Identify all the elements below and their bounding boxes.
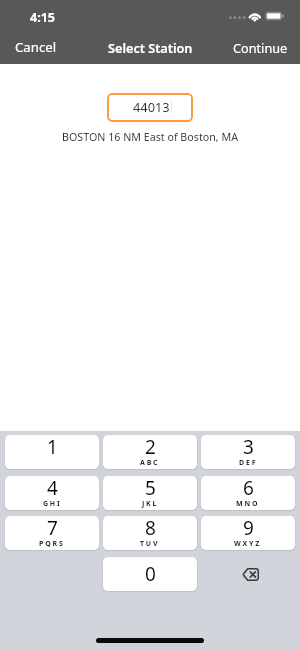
staticText: 0 [145, 561, 156, 587]
button[interactable]: 2 [103, 435, 197, 469]
staticText: 3 [243, 435, 254, 460]
button[interactable]: 8 [103, 516, 197, 550]
staticText: WXYZ [234, 539, 262, 549]
staticText: 5 [145, 476, 156, 501]
staticText: TUV [140, 539, 160, 549]
staticText: DEF [239, 458, 258, 468]
button[interactable]: 5 [103, 476, 197, 510]
button[interactable]: 7 [5, 516, 99, 550]
button[interactable]: 9 [201, 516, 295, 550]
staticText: Cancel [15, 38, 57, 56]
staticText: Select Station [108, 39, 193, 56]
staticText: 44013 [133, 98, 170, 115]
button[interactable]: 1 [5, 435, 99, 469]
button[interactable]: 6 [201, 476, 295, 510]
button[interactable]: 0 [103, 557, 197, 591]
button[interactable]: 44013 [107, 93, 193, 122]
staticText: 1 [47, 435, 58, 460]
button[interactable]: Cancel [0, 31, 67, 63]
staticText: MNO [236, 499, 260, 509]
staticText: JKL [142, 499, 159, 509]
staticText: 2 [145, 435, 156, 460]
staticText: 7 [47, 516, 58, 541]
button[interactable]: Continue [223, 32, 300, 63]
button[interactable]: 3 [201, 435, 295, 469]
button[interactable]: Delete [203, 557, 297, 591]
button[interactable]: 4 [5, 476, 99, 510]
staticText: 9 [243, 516, 254, 541]
staticText: PQRS [39, 539, 65, 549]
staticText: ABC [140, 458, 160, 468]
staticText: 4 [47, 476, 58, 501]
staticText: 4:15 [30, 9, 55, 26]
staticText: 6 [243, 476, 254, 501]
staticText: GHI [43, 499, 62, 509]
staticText: BOSTON 16 NM East of Boston, MA [62, 130, 238, 145]
staticText: Continue [233, 39, 288, 56]
staticText: 8 [145, 516, 156, 541]
